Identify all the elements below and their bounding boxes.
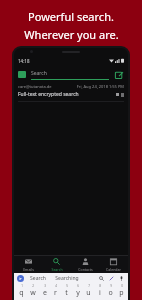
- staticText: 9: [110, 284, 112, 288]
- button[interactable]: care@tutanota.de: [18, 84, 124, 102]
- button[interactable]: 4: [50, 284, 61, 297]
- staticText: Calendar: [106, 267, 121, 272]
- staticText: r: [54, 288, 57, 297]
- button[interactable]: Stickers: [108, 275, 115, 282]
- staticText: 6: [77, 284, 79, 288]
- button[interactable]: Contacts: [72, 256, 99, 273]
- staticText: >: [19, 276, 22, 281]
- staticText: 1: [21, 284, 23, 288]
- button[interactable]: Search: [31, 70, 109, 80]
- staticText: o: [108, 288, 113, 297]
- staticText: q: [19, 288, 24, 297]
- staticText: 2: [32, 284, 34, 288]
- staticText: t: [65, 288, 68, 297]
- button[interactable]: 7: [83, 284, 94, 297]
- staticText: Emails: [23, 267, 34, 272]
- button[interactable]: Voice input: [118, 275, 125, 282]
- button[interactable]: Emails: [15, 256, 42, 273]
- staticText: y: [76, 288, 80, 297]
- button[interactable]: Account: [18, 71, 26, 78]
- staticText: Full-text encrypted search: [18, 91, 79, 98]
- staticText: 8: [99, 284, 101, 288]
- button[interactable]: Calendar: [100, 256, 127, 273]
- staticText: Search: [30, 275, 46, 282]
- staticText: w: [30, 288, 36, 297]
- button[interactable]: 8: [94, 284, 105, 297]
- staticText: Wherever you are.: [24, 27, 119, 42]
- staticText: p: [119, 288, 124, 297]
- staticText: 5: [66, 284, 68, 288]
- button[interactable]: 6: [72, 284, 83, 297]
- button[interactable]: 5: [61, 284, 72, 297]
- staticText: 7: [88, 284, 90, 288]
- button[interactable]: Compose: [114, 70, 124, 80]
- button[interactable]: 9: [105, 284, 116, 297]
- staticText: Search: [51, 267, 63, 272]
- staticText: e: [43, 288, 47, 297]
- button[interactable]: 2: [27, 284, 39, 297]
- button[interactable]: Expand toolbar: [17, 275, 24, 282]
- staticText: i: [99, 288, 101, 297]
- staticText: 0: [121, 284, 123, 288]
- button[interactable]: Search: [30, 275, 46, 282]
- staticText: 3: [44, 284, 46, 288]
- staticText: 14:18: [18, 58, 30, 64]
- staticText: Search: [31, 70, 47, 77]
- staticText: Contacts: [78, 267, 93, 272]
- button[interactable]: 3: [39, 284, 50, 297]
- staticText: Powerful search.: [28, 9, 114, 24]
- button[interactable]: Search: [43, 256, 70, 273]
- staticText: 4: [55, 284, 57, 288]
- staticText: Searching: [55, 275, 79, 282]
- staticText: u: [86, 288, 91, 297]
- button[interactable]: 1: [15, 284, 27, 297]
- staticText: Fri, Aug 24, 2018 1:55 PM: [76, 84, 124, 89]
- staticText: care@tutanota.de: [18, 84, 52, 89]
- button[interactable]: 0: [116, 284, 127, 297]
- button[interactable]: Search: [98, 275, 105, 282]
- button[interactable]: Searching: [55, 275, 79, 282]
